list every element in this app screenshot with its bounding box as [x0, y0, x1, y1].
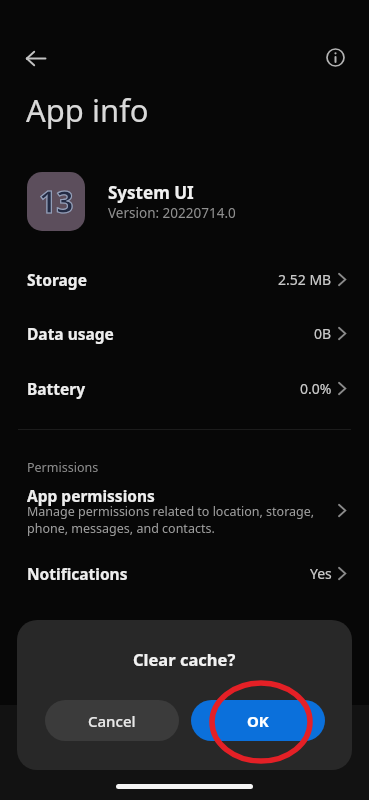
button[interactable] — [17, 43, 55, 73]
button[interactable]: App permissions — [0, 478, 369, 542]
button[interactable]: Storage — [0, 252, 369, 306]
staticText: Notifications — [27, 563, 128, 584]
staticText: 0.0% — [300, 379, 332, 398]
staticText: Version: 20220714.0 — [108, 204, 236, 222]
staticText: Storage — [27, 269, 87, 290]
staticText: App info — [26, 89, 149, 131]
staticText: App permissions — [27, 485, 155, 506]
staticText: 13 — [39, 181, 74, 222]
staticText: Cancel — [88, 711, 136, 731]
button[interactable]: Notifications — [0, 546, 369, 600]
staticText: OK — [247, 711, 269, 731]
staticText: Clear cache? — [133, 648, 236, 670]
staticText: Battery — [27, 378, 86, 399]
button[interactable]: OK — [191, 700, 325, 741]
button[interactable]: Cancel — [45, 700, 179, 741]
staticText: Manage permissions related to location, … — [27, 503, 315, 537]
staticText: Permissions — [27, 459, 99, 476]
staticText: 2.52 MB — [278, 270, 332, 289]
button[interactable]: Battery — [0, 361, 369, 415]
staticText: 13 — [39, 181, 74, 222]
staticText: 0B — [314, 324, 332, 343]
staticText: System UI — [108, 181, 194, 204]
staticText: Yes — [310, 564, 332, 583]
staticText: Data usage — [27, 323, 114, 344]
button[interactable]: Data usage — [0, 306, 369, 360]
button[interactable] — [317, 39, 353, 75]
